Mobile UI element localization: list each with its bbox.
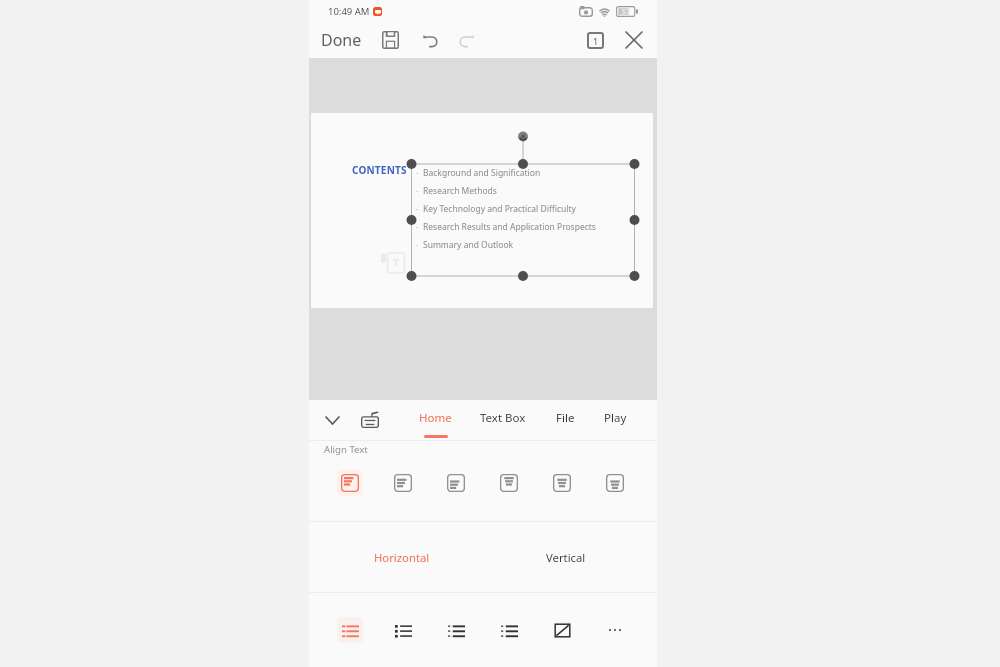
button[interactable]: Collapse panel xyxy=(317,405,347,435)
button[interactable]: Play xyxy=(604,400,627,440)
button[interactable]: Align option 2 xyxy=(390,470,416,496)
staticText: Align Text xyxy=(324,443,368,456)
button[interactable]: List option 3 xyxy=(443,617,469,643)
staticText: Home xyxy=(419,410,452,426)
staticText: Background and Signification xyxy=(423,167,541,179)
button[interactable]: Align option 1 xyxy=(337,470,363,496)
staticText: Key Technology and Practical Difficulty xyxy=(423,203,576,215)
button[interactable]: Done xyxy=(315,22,368,58)
button[interactable]: Align option 5 xyxy=(549,470,575,496)
button[interactable]: List option 1 xyxy=(337,617,363,643)
button[interactable]: Text Box xyxy=(480,400,526,440)
staticText: File xyxy=(556,410,575,426)
staticText: Play xyxy=(604,410,627,426)
staticText: 57 xyxy=(622,7,631,17)
button[interactable]: Keyboard xyxy=(355,405,385,435)
staticText: Research Methods xyxy=(423,185,497,197)
button[interactable]: File xyxy=(556,400,575,440)
staticText: 10:49 AM xyxy=(328,5,370,18)
staticText: 1 xyxy=(593,35,599,47)
staticText: Done xyxy=(321,29,362,51)
button[interactable]: Home xyxy=(419,400,452,440)
button[interactable]: Align option 4 xyxy=(496,470,522,496)
button[interactable]: Close xyxy=(619,25,649,55)
button[interactable]: Undo xyxy=(415,25,445,55)
button[interactable]: List option 2 xyxy=(390,617,416,643)
button[interactable]: Horizontal xyxy=(309,522,483,592)
staticText: Vertical xyxy=(546,550,586,565)
button[interactable]: Redo xyxy=(452,25,482,55)
button[interactable]: List option 4 xyxy=(496,617,522,643)
button[interactable]: More options xyxy=(602,617,628,643)
staticText: Text Box xyxy=(480,410,526,426)
button[interactable]: Page 1 xyxy=(580,25,610,55)
button[interactable]: Save xyxy=(375,25,405,55)
button[interactable]: Align option 6 xyxy=(602,470,628,496)
button[interactable]: Align option 3 xyxy=(443,470,469,496)
staticText: CONTENTS xyxy=(352,163,407,177)
staticText: Research Results and Application Prospec… xyxy=(423,221,596,233)
button[interactable]: List option 5 xyxy=(549,617,575,643)
staticText: Summary and Outlook xyxy=(423,239,514,251)
button[interactable]: Vertical xyxy=(483,522,657,592)
button[interactable]: Selected text box xyxy=(412,164,635,276)
staticText: Horizontal xyxy=(374,550,430,565)
